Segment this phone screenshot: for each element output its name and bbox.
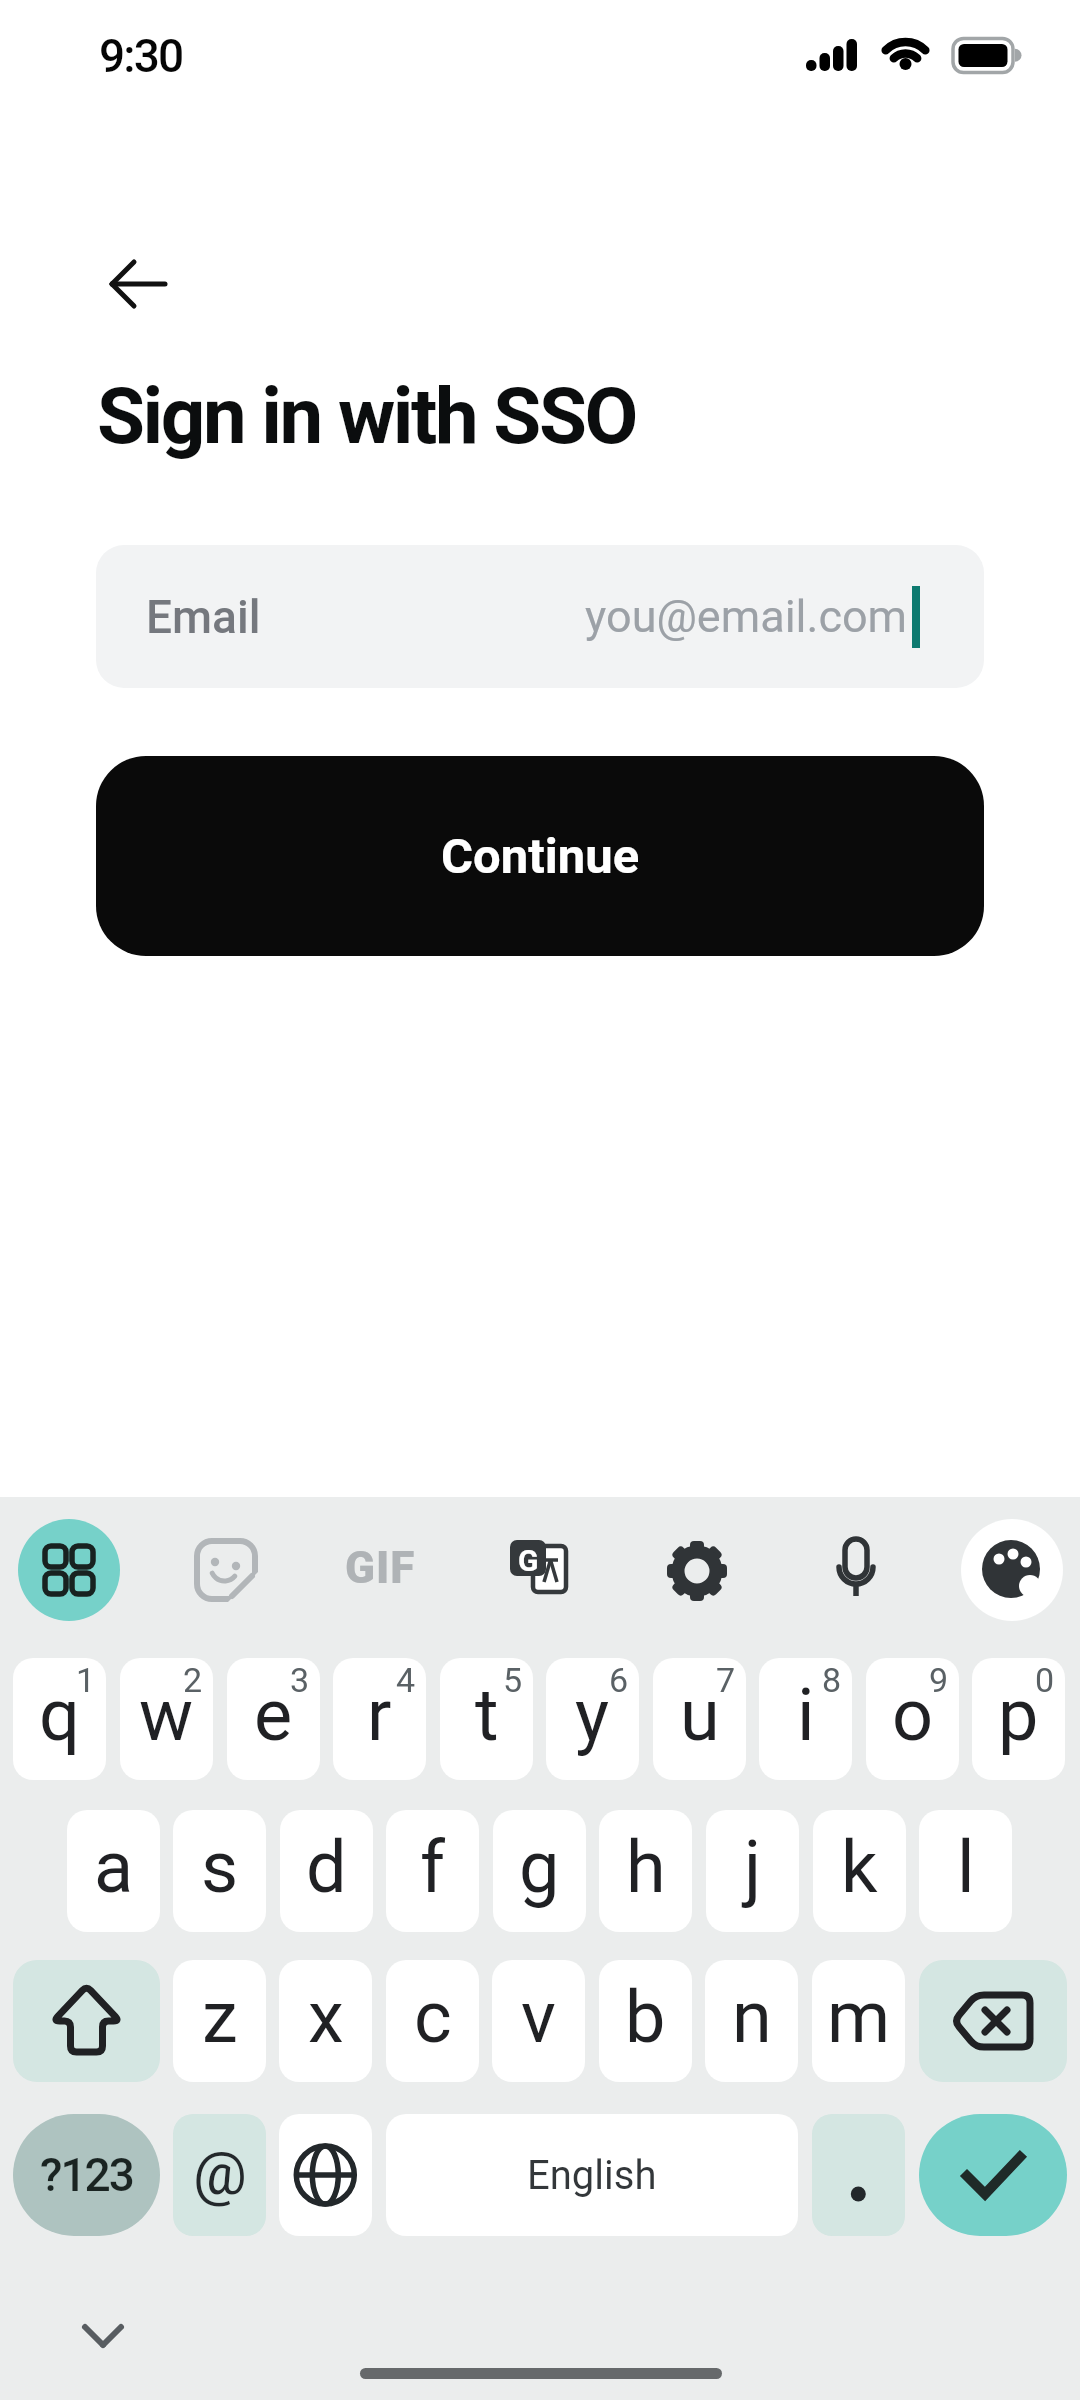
button[interactable]: ?123 bbox=[13, 2114, 160, 2236]
button[interactable]: k bbox=[813, 1810, 906, 1932]
staticText: 9:30 bbox=[99, 29, 183, 83]
staticText: 3 bbox=[290, 1660, 310, 1700]
staticText: n bbox=[732, 1975, 772, 2059]
button[interactable]: a bbox=[67, 1810, 160, 1932]
button[interactable]: l bbox=[919, 1810, 1012, 1932]
staticText: q bbox=[39, 1673, 80, 1757]
button[interactable] bbox=[18, 1519, 120, 1621]
staticText: h bbox=[626, 1825, 666, 1909]
staticText: 2 bbox=[183, 1660, 203, 1700]
button[interactable]: v bbox=[492, 1960, 585, 2082]
staticText: Continue bbox=[441, 828, 640, 885]
staticText: 4 bbox=[396, 1660, 416, 1700]
staticText: l bbox=[957, 1825, 975, 1909]
staticText: 8 bbox=[822, 1660, 842, 1700]
staticText: c bbox=[414, 1975, 452, 2059]
staticText: s bbox=[201, 1825, 239, 1909]
staticText: z bbox=[202, 1975, 238, 2059]
staticText: a bbox=[94, 1825, 134, 1909]
staticText: English bbox=[527, 2152, 657, 2199]
button[interactable]: w bbox=[120, 1658, 213, 1780]
staticText: Sign in with SSO bbox=[97, 371, 636, 462]
staticText: j bbox=[744, 1825, 762, 1909]
staticText: k bbox=[841, 1825, 878, 1909]
staticText: v bbox=[521, 1975, 556, 2059]
button[interactable]: Continue bbox=[96, 756, 984, 956]
staticText: G bbox=[518, 1543, 539, 1578]
staticText: you@email.com bbox=[585, 590, 908, 643]
staticText: d bbox=[306, 1825, 347, 1909]
staticText: 9 bbox=[929, 1660, 949, 1700]
staticText: i bbox=[797, 1673, 815, 1757]
button[interactable] bbox=[961, 1519, 1063, 1621]
staticText: t bbox=[475, 1673, 499, 1757]
button[interactable]: @ bbox=[173, 2114, 266, 2236]
button[interactable]: g bbox=[493, 1810, 586, 1932]
button[interactable]: i bbox=[759, 1658, 852, 1780]
staticText: w bbox=[139, 1673, 194, 1757]
button[interactable]: y bbox=[546, 1658, 639, 1780]
button[interactable] bbox=[919, 2114, 1067, 2236]
staticText: b bbox=[625, 1975, 666, 2059]
button[interactable]: r bbox=[333, 1658, 426, 1780]
staticText: @ bbox=[193, 2138, 247, 2208]
staticText: g bbox=[519, 1825, 560, 1909]
button[interactable]: d bbox=[280, 1810, 373, 1932]
staticText: e bbox=[254, 1673, 293, 1757]
button[interactable] bbox=[812, 2114, 905, 2236]
button[interactable] bbox=[13, 1960, 160, 2082]
button[interactable]: s bbox=[173, 1810, 266, 1932]
button[interactable]: Email bbox=[96, 545, 984, 688]
button[interactable]: e bbox=[227, 1658, 320, 1780]
staticText: Email bbox=[146, 590, 261, 644]
staticText: u bbox=[680, 1673, 720, 1757]
staticText: 5 bbox=[503, 1660, 523, 1700]
button[interactable]: GIF bbox=[330, 1540, 430, 1596]
button[interactable]: u bbox=[653, 1658, 746, 1780]
button[interactable]: t bbox=[440, 1658, 533, 1780]
staticText: r bbox=[367, 1673, 392, 1757]
staticText: 1 bbox=[76, 1660, 96, 1700]
button[interactable]: p bbox=[972, 1658, 1065, 1780]
button[interactable]: z bbox=[173, 1960, 266, 2082]
staticText: 7 bbox=[716, 1660, 736, 1700]
staticText: 6 bbox=[609, 1660, 629, 1700]
button[interactable] bbox=[279, 2114, 372, 2236]
staticText: y bbox=[575, 1673, 610, 1757]
staticText: m bbox=[827, 1975, 891, 2059]
button[interactable] bbox=[830, 1535, 882, 1601]
button[interactable]: f bbox=[386, 1810, 479, 1932]
button[interactable]: c bbox=[386, 1960, 479, 2082]
staticText: o bbox=[892, 1673, 934, 1757]
staticText: f bbox=[420, 1825, 446, 1909]
button[interactable] bbox=[192, 1536, 260, 1604]
button[interactable]: b bbox=[599, 1960, 692, 2082]
button[interactable]: x bbox=[279, 1960, 372, 2082]
button[interactable]: m bbox=[812, 1960, 905, 2082]
button[interactable] bbox=[919, 1960, 1067, 2082]
staticText: GIF bbox=[345, 1542, 416, 1594]
staticText: x bbox=[308, 1975, 344, 2059]
staticText: 0 bbox=[1035, 1660, 1055, 1700]
staticText: p bbox=[998, 1673, 1039, 1757]
staticText: ?123 bbox=[40, 2148, 133, 2202]
button[interactable]: j bbox=[706, 1810, 799, 1932]
button[interactable]: q bbox=[13, 1658, 106, 1780]
button[interactable]: o bbox=[866, 1658, 959, 1780]
button[interactable]: G bbox=[505, 1536, 571, 1600]
button[interactable]: English bbox=[386, 2114, 798, 2236]
button[interactable] bbox=[667, 1541, 727, 1601]
button[interactable]: n bbox=[705, 1960, 798, 2082]
button[interactable] bbox=[88, 254, 188, 314]
button[interactable]: h bbox=[599, 1810, 692, 1932]
